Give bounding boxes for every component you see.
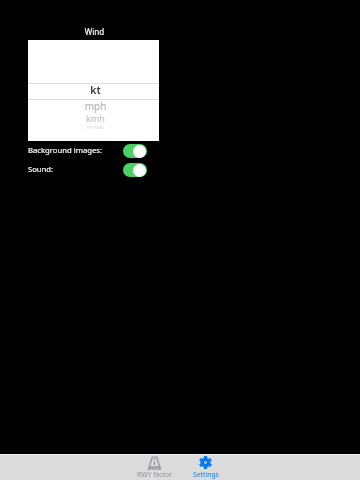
staticText: Background images: bbox=[28, 145, 103, 155]
staticText: RWY factor bbox=[137, 470, 172, 479]
button[interactable]: Settings bbox=[180, 454, 231, 480]
staticText: kt bbox=[30, 83, 161, 97]
staticText: mph bbox=[30, 99, 161, 113]
other: Toggle Background images: bbox=[123, 144, 147, 158]
staticText: kmh bbox=[30, 112, 161, 124]
button[interactable]: kt bbox=[28, 40, 159, 141]
button[interactable]: RWY factor bbox=[129, 454, 180, 480]
staticText: Settings bbox=[193, 470, 219, 479]
button[interactable]: Background images: bbox=[28, 144, 147, 158]
staticText: m/sec bbox=[30, 123, 161, 131]
staticText: Sound: bbox=[28, 164, 54, 174]
other: Toggle Sound: bbox=[123, 163, 147, 177]
button[interactable]: Sound: bbox=[28, 163, 147, 177]
staticText: Wind bbox=[29, 26, 160, 37]
